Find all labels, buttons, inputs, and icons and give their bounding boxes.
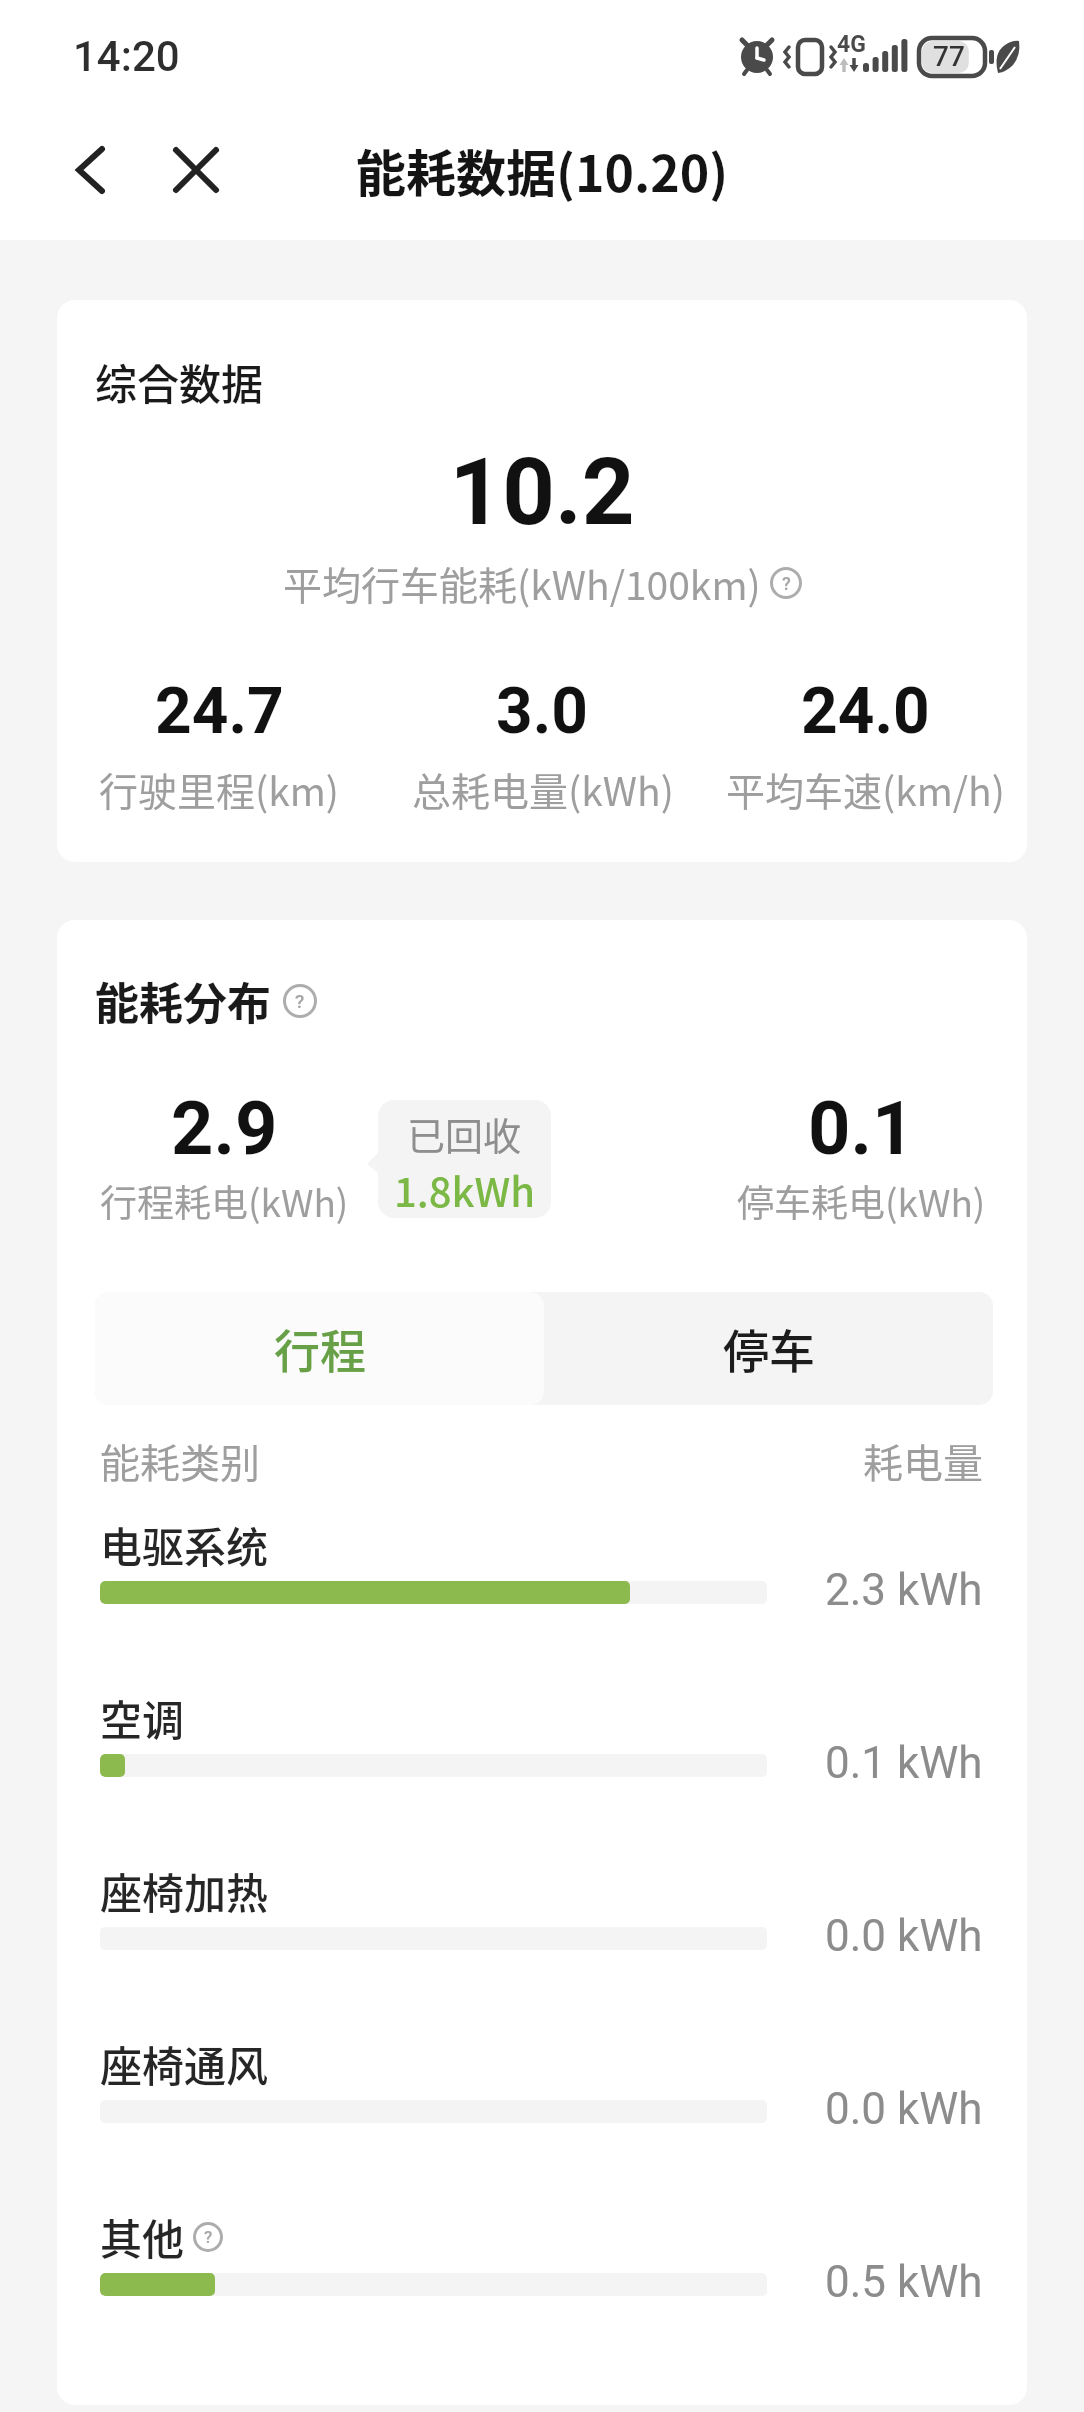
staticText: 0.5 kWh	[825, 2256, 983, 2308]
staticText: 4G	[837, 31, 866, 58]
staticText: 座椅通风	[100, 2033, 269, 2094]
button[interactable]: ?	[193, 2222, 223, 2252]
staticText: 座椅加热	[100, 1860, 269, 1921]
staticText: 能耗数据(10.20)	[356, 134, 729, 206]
staticText: 耗电量	[863, 1432, 983, 1490]
button[interactable]: ?	[283, 984, 317, 1018]
button[interactable]: 停车	[544, 1292, 993, 1405]
staticText: 0.1 kWh	[825, 1737, 983, 1789]
staticText: 0.0 kWh	[825, 2083, 983, 2135]
staticText: 综合数据	[95, 351, 264, 412]
staticText: 停车耗电(kWh)	[737, 1174, 986, 1228]
staticText: 2.9	[171, 1085, 278, 1172]
button[interactable]: 行程	[95, 1292, 544, 1405]
staticText: 0.0 kWh	[825, 1910, 983, 1962]
staticText: 24.0	[801, 674, 930, 749]
staticText: 行程耗电(kWh)	[100, 1174, 349, 1228]
staticText: ?	[295, 990, 305, 1012]
staticText: 总耗电量(kWh)	[412, 761, 674, 817]
staticText: 电驱系统	[100, 1514, 269, 1575]
button[interactable]	[166, 140, 226, 200]
staticText: 空调	[100, 1687, 185, 1748]
staticText: 77	[933, 40, 965, 73]
staticText: ?	[782, 573, 791, 594]
staticText: 其他	[100, 2206, 185, 2267]
staticText: 能耗分布	[95, 969, 271, 1033]
staticText: 1.8kWh	[394, 1161, 536, 1218]
staticText: 24.7	[155, 674, 284, 749]
staticText: 14:20	[73, 32, 180, 81]
staticText: 平均车速(km/h)	[726, 761, 1005, 817]
staticText: 行驶里程(km)	[99, 761, 340, 817]
button[interactable]: ?	[770, 567, 802, 599]
staticText: 2.3 kWh	[825, 1564, 983, 1616]
staticText: 10.2	[57, 439, 1027, 547]
staticText: 已回收	[407, 1106, 522, 1161]
staticText: 3.0	[496, 674, 589, 749]
button[interactable]	[58, 138, 122, 202]
staticText: 停车	[723, 1315, 815, 1382]
staticText: 行程	[274, 1315, 366, 1382]
staticText: ?	[204, 2227, 213, 2247]
staticText: 平均行车能耗(kWh/100km)	[283, 555, 761, 611]
staticText: 0.1	[808, 1085, 915, 1172]
staticText: 能耗类别	[100, 1432, 260, 1490]
